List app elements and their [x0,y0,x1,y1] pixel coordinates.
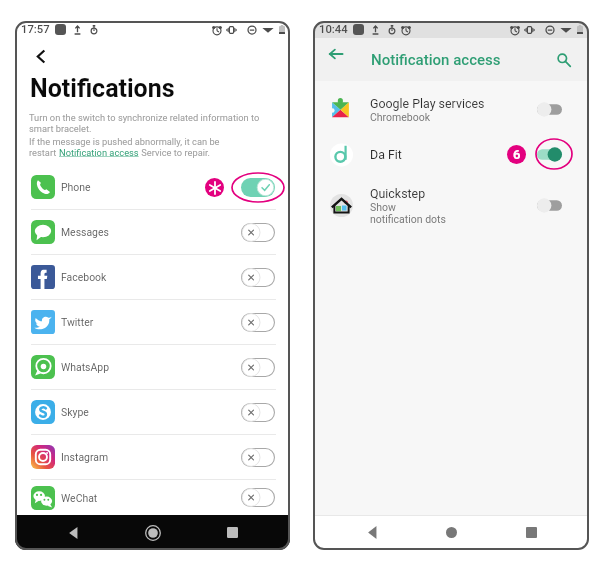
button[interactable]: Messages [15,210,290,254]
staticText: Service to repair. [139,147,210,158]
staticText: Show [370,201,396,213]
staticText: Twitter [61,316,94,328]
button[interactable]: Quickstep [313,171,589,239]
button[interactable]: WhatsApp [15,345,290,389]
staticText: restart [29,147,59,158]
button[interactable]: WeChat [15,480,290,515]
staticText: Notification access [371,51,501,69]
button[interactable]: Back [320,38,352,70]
button[interactable]: Skype [15,390,290,434]
button[interactable]: Recents [510,515,552,550]
staticText: If the message is pushed abnormally, it … [29,136,220,147]
button[interactable]: Back [26,41,56,71]
staticText: Instagram [61,451,109,463]
staticText: Skype [61,406,89,418]
staticText: Google Play services [370,96,485,111]
staticText: Quickstep [370,186,426,201]
button[interactable]: Instagram [15,435,290,479]
button[interactable]: Search [549,38,579,81]
button[interactable]: Notification access [59,147,139,158]
staticText: notification dots [370,213,446,225]
staticText: WeChat [61,492,98,504]
staticText: Notifications [30,74,175,103]
button[interactable]: Phone [15,165,290,209]
button[interactable]: Google Play services [313,81,589,137]
button[interactable]: Facebook [15,255,290,299]
staticText: smart bracelet. [29,123,92,134]
staticText: 17:57 [21,23,50,36]
button[interactable]: Back [351,515,393,550]
staticText: 10:44 [319,23,348,36]
staticText: Turn on the switch to synchronize relate… [29,112,260,123]
staticText: Chromebook [370,111,431,123]
staticText: Messages [61,226,109,238]
staticText: Facebook [61,271,107,283]
staticText: Phone [61,181,91,193]
button[interactable]: Da Fit [313,137,589,171]
button[interactable]: Back [52,515,94,550]
staticText: 6 [513,147,521,162]
button[interactable]: Home [132,515,174,550]
button[interactable]: Home [430,515,472,550]
button[interactable]: Recents [211,515,253,550]
staticText: WhatsApp [61,361,110,373]
button[interactable]: Twitter [15,300,290,344]
staticText: Da Fit [370,147,402,162]
